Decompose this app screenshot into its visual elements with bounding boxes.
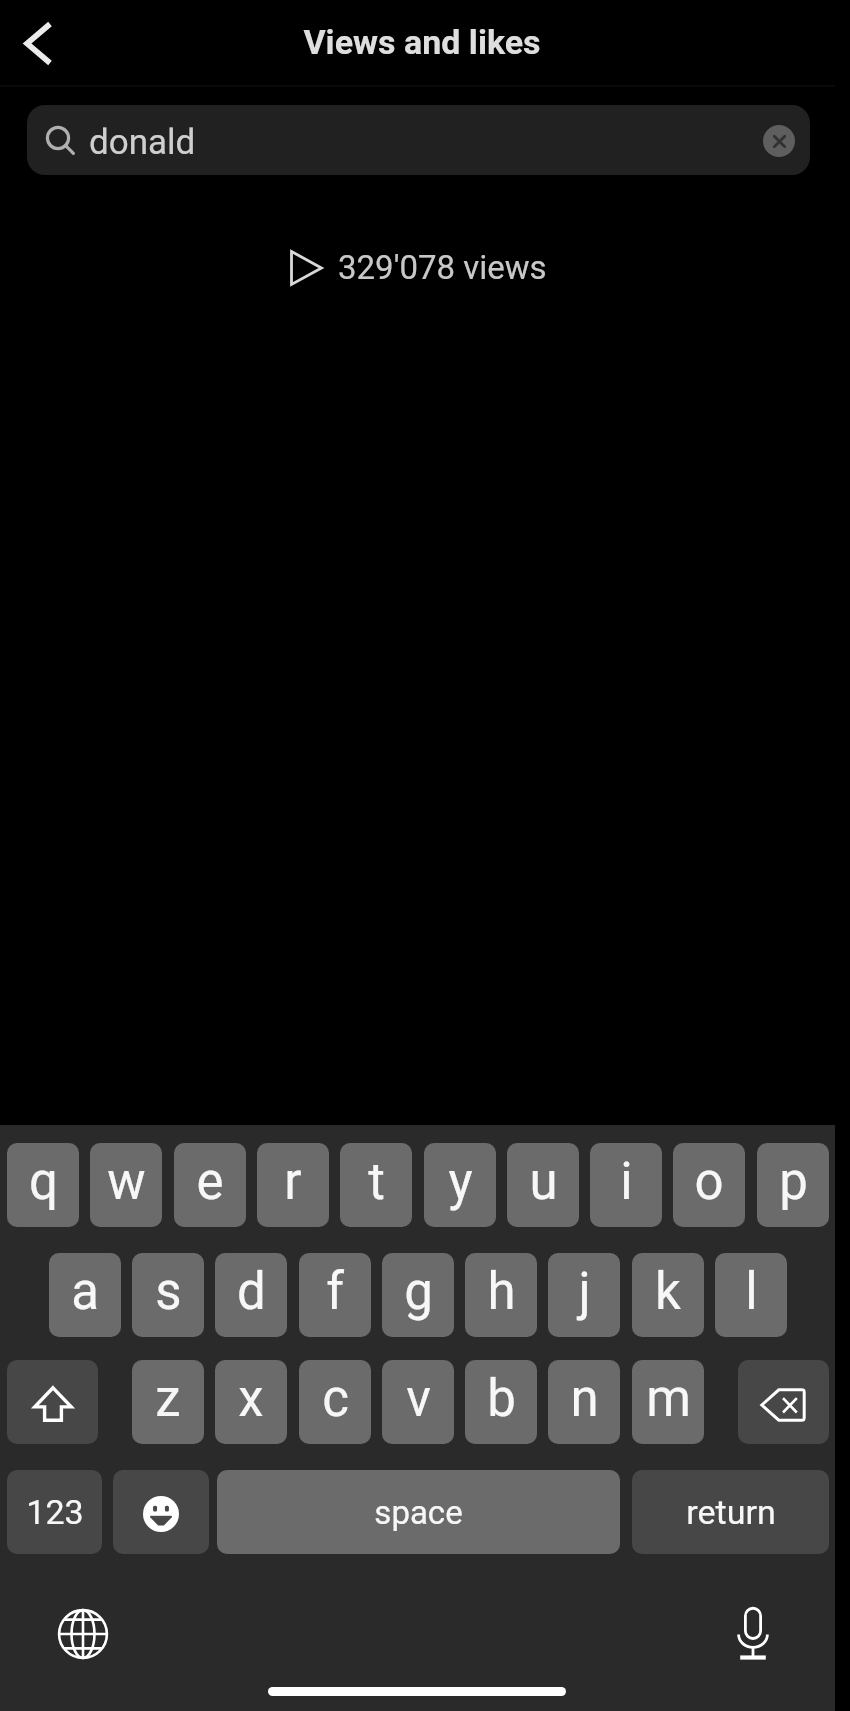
button[interactable]: s xyxy=(132,1253,204,1337)
button[interactable]: 123 xyxy=(7,1470,102,1554)
button[interactable]: j xyxy=(548,1253,620,1337)
staticText: l xyxy=(745,1262,758,1322)
button[interactable]: Clear search xyxy=(763,125,795,157)
staticText: s xyxy=(155,1262,182,1322)
button[interactable]: Shift xyxy=(7,1360,98,1444)
button[interactable]: space xyxy=(217,1470,620,1554)
button[interactable]: u xyxy=(507,1143,579,1227)
staticText: n xyxy=(570,1369,599,1429)
button[interactable]: n xyxy=(548,1360,620,1444)
staticText: b xyxy=(487,1369,516,1429)
staticText: 329'078 views xyxy=(338,248,547,287)
staticText: x xyxy=(238,1369,264,1429)
staticText: a xyxy=(71,1262,99,1322)
staticText: k xyxy=(655,1262,681,1322)
button[interactable]: t xyxy=(340,1143,412,1227)
staticText: y xyxy=(448,1152,473,1212)
staticText: w xyxy=(107,1152,146,1212)
staticText: e xyxy=(196,1152,224,1212)
button[interactable]: Back xyxy=(8,13,68,73)
button[interactable]: q xyxy=(7,1143,79,1227)
button[interactable]: b xyxy=(465,1360,537,1444)
staticText: q xyxy=(29,1152,58,1212)
button[interactable]: r xyxy=(257,1143,329,1227)
button[interactable]: x xyxy=(215,1360,287,1444)
button[interactable]: Backspace xyxy=(738,1360,829,1444)
button[interactable]: p xyxy=(757,1143,829,1227)
button[interactable]: v xyxy=(382,1360,454,1444)
staticText: u xyxy=(529,1152,558,1212)
staticText: h xyxy=(487,1262,516,1322)
staticText: Views and likes xyxy=(0,22,847,1711)
staticText: v xyxy=(406,1369,431,1429)
button[interactable]: return xyxy=(632,1470,829,1554)
button[interactable]: l xyxy=(715,1253,787,1337)
button[interactable]: Dictation xyxy=(718,1599,788,1669)
button[interactable]: w xyxy=(90,1143,162,1227)
button[interactable]: k xyxy=(632,1253,704,1337)
button[interactable]: g xyxy=(382,1253,454,1337)
staticText: space xyxy=(374,1493,463,1532)
button[interactable]: c xyxy=(299,1360,371,1444)
button[interactable]: h xyxy=(465,1253,537,1337)
staticText: d xyxy=(237,1262,266,1322)
staticText: r xyxy=(284,1152,302,1212)
staticText: t xyxy=(368,1152,385,1212)
staticText: f xyxy=(326,1262,344,1322)
button[interactable]: Change keyboard xyxy=(48,1599,118,1669)
button[interactable]: d xyxy=(215,1253,287,1337)
button[interactable]: donald xyxy=(27,105,810,175)
button[interactable]: a xyxy=(49,1253,121,1337)
staticText: i xyxy=(620,1152,633,1212)
staticText: o xyxy=(694,1152,724,1212)
button[interactable]: Emoji xyxy=(113,1470,209,1554)
button[interactable]: e xyxy=(174,1143,246,1227)
button[interactable]: m xyxy=(632,1360,704,1444)
staticText: 123 xyxy=(26,1492,84,1532)
staticText: z xyxy=(155,1369,181,1429)
staticText: c xyxy=(322,1369,349,1429)
staticText: j xyxy=(578,1262,591,1322)
button[interactable]: z xyxy=(132,1360,204,1444)
button[interactable]: o xyxy=(673,1143,745,1227)
button[interactable]: y xyxy=(424,1143,496,1227)
staticText: return xyxy=(686,1492,776,1532)
staticText: m xyxy=(646,1369,691,1429)
button[interactable]: f xyxy=(299,1253,371,1337)
staticText: p xyxy=(779,1152,808,1212)
staticText: g xyxy=(404,1262,433,1322)
staticText: donald xyxy=(89,122,196,163)
button[interactable]: i xyxy=(590,1143,662,1227)
